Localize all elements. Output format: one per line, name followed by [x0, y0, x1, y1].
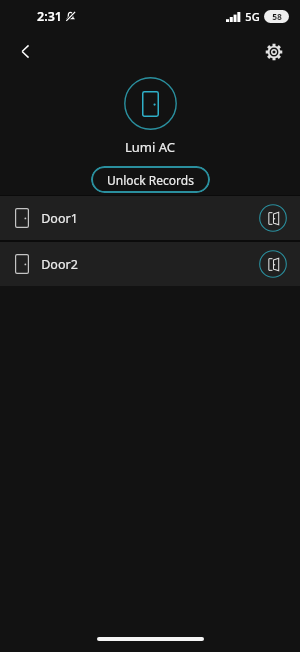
staticText: 58 [272, 11, 282, 23]
staticText: 5G [245, 9, 260, 24]
staticText: Lumi AC [125, 138, 175, 156]
staticText: Door1 [41, 210, 78, 227]
staticText: Unlock Records [107, 172, 194, 188]
button[interactable]: Door1 [0, 196, 300, 240]
staticText: 2:31 [37, 8, 62, 25]
button[interactable]: Open Door1 [259, 204, 287, 232]
button[interactable]: Open Door2 [259, 250, 287, 278]
button[interactable]: Door2 [0, 242, 300, 286]
button[interactable]: Back [6, 33, 44, 70]
button[interactable]: Unlock Records [91, 166, 210, 193]
staticText: Door2 [41, 256, 78, 273]
button[interactable]: Settings [255, 33, 293, 70]
